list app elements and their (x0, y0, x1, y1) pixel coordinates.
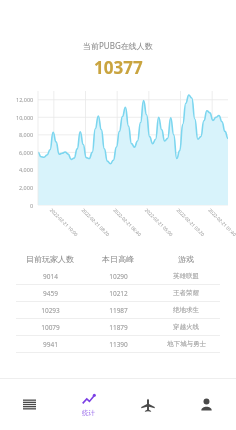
staticText: 11390 (109, 340, 128, 349)
staticText: 穿越火线 (173, 323, 199, 331)
staticText: 11987 (109, 306, 128, 315)
staticText: 地下城与勇士 (167, 340, 206, 348)
staticText: 当前PUBG在线人数 (83, 40, 153, 51)
staticText: 王者荣耀 (173, 289, 199, 297)
staticText: 9014 (43, 272, 58, 281)
staticText: 10377 (94, 56, 143, 79)
button[interactable]: Flights (118, 379, 177, 430)
staticText: 绝地求生 (173, 306, 199, 314)
button[interactable]: Menu (0, 379, 59, 430)
staticText: 10293 (41, 306, 60, 315)
staticText: 10290 (109, 272, 128, 281)
button[interactable]: Profile (177, 379, 236, 430)
staticText: 11879 (109, 323, 128, 332)
button[interactable]: 9941 (16, 336, 220, 352)
staticText: 本日高峰 (102, 254, 134, 264)
staticText: 9459 (43, 289, 58, 298)
staticText: 10079 (41, 323, 60, 332)
staticText: 统计 (82, 409, 95, 417)
staticText: 游戏 (178, 254, 194, 264)
staticText: 英雄联盟 (173, 272, 199, 280)
button[interactable]: 统计 (59, 379, 118, 430)
staticText: 9941 (43, 340, 58, 349)
button[interactable]: 10293 (16, 302, 220, 318)
button[interactable]: 10079 (16, 319, 220, 335)
staticText: 10212 (109, 289, 128, 298)
button[interactable]: 9459 (16, 285, 220, 301)
button[interactable]: 9014 (16, 268, 220, 284)
staticText: 目前玩家人数 (26, 254, 74, 264)
